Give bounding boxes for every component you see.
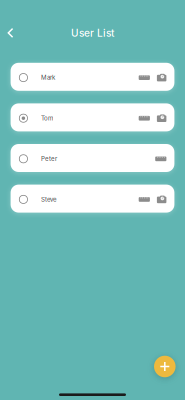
staticText: Peter	[41, 155, 57, 162]
button[interactable]: Add user	[152, 353, 178, 379]
staticText: Steve	[41, 196, 57, 203]
button[interactable]: Tom	[11, 103, 174, 131]
button[interactable]: Back	[0, 22, 20, 44]
button[interactable]: Peter	[11, 144, 174, 172]
staticText: Tom	[41, 114, 53, 122]
button[interactable]: Mark	[11, 63, 174, 91]
button[interactable]: Steve	[11, 185, 174, 213]
staticText: User List	[71, 27, 114, 39]
staticText: Mark	[41, 74, 55, 81]
